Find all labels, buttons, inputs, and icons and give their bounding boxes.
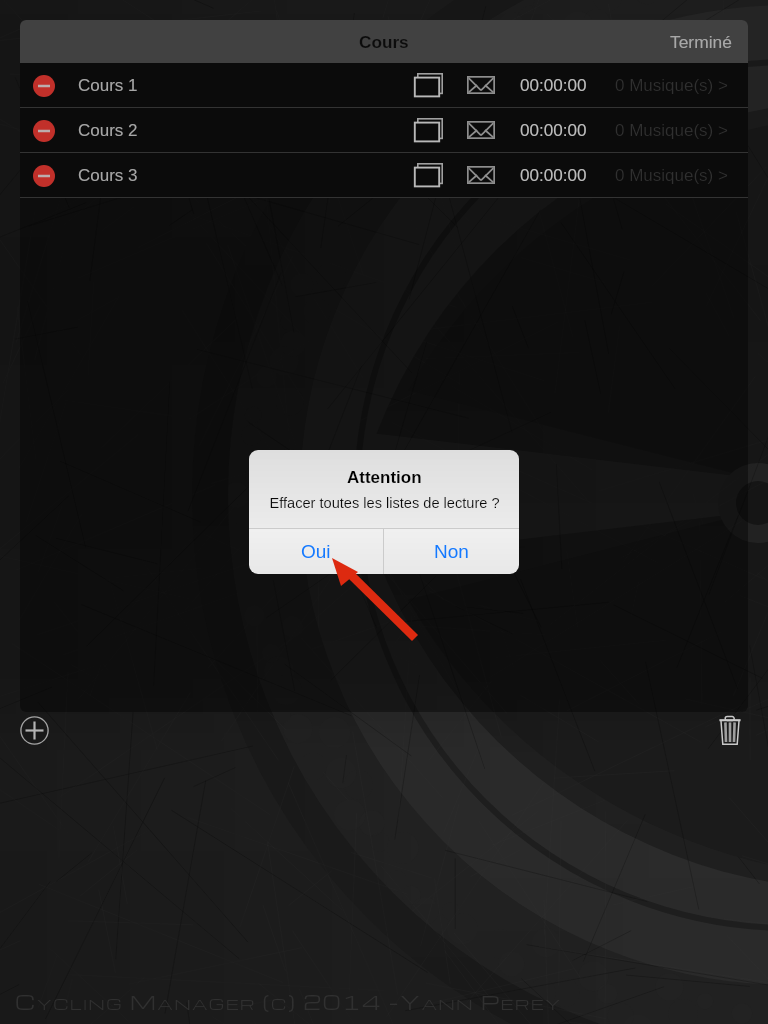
staticText: 0 Musique(s) > xyxy=(615,76,728,95)
staticText: Non xyxy=(434,541,469,562)
staticText: Terminé xyxy=(670,32,732,51)
button[interactable]: 0 Musique(s) > xyxy=(609,108,734,152)
staticText: CYCLING MANAGER (C) 2014 -YANN PEREY xyxy=(15,988,562,1015)
button[interactable]: Duplicate xyxy=(409,66,447,104)
button[interactable]: Remove Cours 3 xyxy=(20,153,748,197)
staticText: 0 Musique(s) > xyxy=(615,121,728,140)
staticText: Oui xyxy=(301,541,331,562)
staticText: 00:00:00 xyxy=(520,76,587,95)
staticText: Attention xyxy=(347,468,422,487)
button[interactable]: Duplicate xyxy=(409,111,447,149)
button[interactable]: Duplicate xyxy=(409,156,447,194)
staticText: Cours 3 xyxy=(78,166,138,185)
button[interactable]: Delete all xyxy=(710,710,750,750)
button[interactable]: Remove Cours 3 xyxy=(31,163,56,188)
button[interactable]: Oui xyxy=(249,529,383,574)
staticText: Cours 1 xyxy=(78,76,138,95)
button[interactable]: Remove Cours 1 xyxy=(31,73,56,98)
button[interactable]: 0 Musique(s) > xyxy=(609,63,734,107)
button[interactable]: Add course xyxy=(14,710,54,750)
staticText: 00:00:00 xyxy=(520,166,587,185)
button[interactable]: Non xyxy=(384,529,519,574)
button[interactable]: Remove Cours 2 xyxy=(31,118,56,143)
staticText: Cours xyxy=(359,32,409,51)
button[interactable]: Send by mail xyxy=(463,157,499,193)
button[interactable]: Send by mail xyxy=(463,67,499,103)
button[interactable]: Remove Cours 1 xyxy=(20,63,748,107)
staticText: Cours 2 xyxy=(78,121,138,140)
button[interactable]: Remove Cours 2 xyxy=(20,108,748,152)
button[interactable]: Send by mail xyxy=(463,112,499,148)
staticText: 00:00:00 xyxy=(520,121,587,140)
staticText: 0 Musique(s) > xyxy=(615,166,728,185)
button[interactable]: Terminé xyxy=(654,20,748,63)
staticText: Effacer toutes les listes de lecture ? xyxy=(269,495,500,511)
button[interactable]: 0 Musique(s) > xyxy=(609,153,734,197)
